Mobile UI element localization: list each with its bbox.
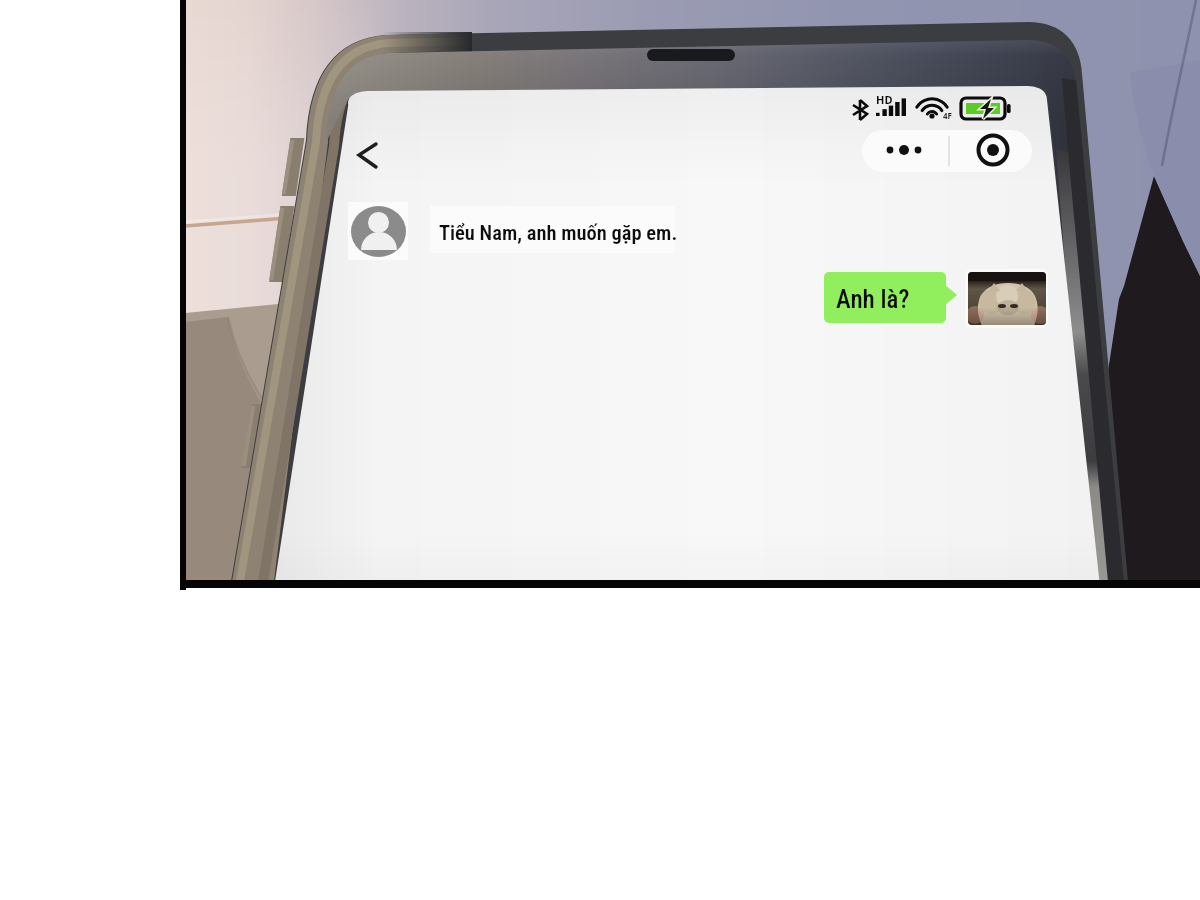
button[interactable]: More options <box>862 130 950 172</box>
button[interactable]: Contact avatar <box>348 203 408 261</box>
button[interactable]: Tiểu Nam, anh muốn gặp em. <box>428 203 678 257</box>
button[interactable]: Back <box>346 130 396 180</box>
button[interactable]: Anh là? <box>824 270 948 324</box>
button[interactable]: Your profile photo <box>964 266 1050 328</box>
button[interactable]: Close mini program <box>950 130 1032 172</box>
